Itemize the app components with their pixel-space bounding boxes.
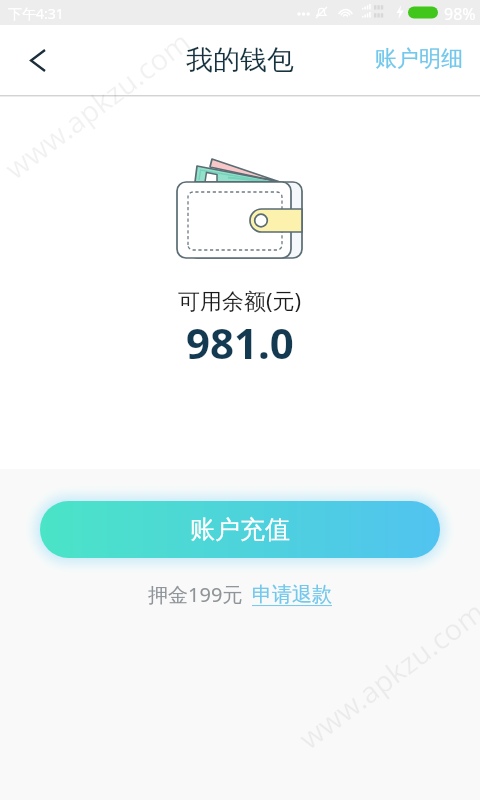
staticText: 账户充值: [190, 514, 290, 545]
button[interactable]: 账户明细: [361, 37, 480, 81]
staticText: www.apkzu.com: [0, 22, 198, 187]
button[interactable]: 账户充值: [40, 501, 440, 558]
staticText: 可用余额(元): [178, 285, 302, 315]
staticText: 98%: [444, 3, 476, 25]
staticText: 下午4:31: [8, 4, 64, 23]
staticText: 981.0: [186, 314, 294, 371]
staticText: 申请退款: [252, 582, 332, 607]
staticText: 账户明细: [375, 45, 463, 73]
button[interactable]: 申请退款: [252, 582, 332, 607]
button[interactable]: Back: [6, 38, 70, 82]
staticText: 押金199元: [148, 581, 243, 608]
staticText: 我的钱包: [186, 43, 294, 77]
staticText: www.apkzu.com: [290, 592, 480, 757]
